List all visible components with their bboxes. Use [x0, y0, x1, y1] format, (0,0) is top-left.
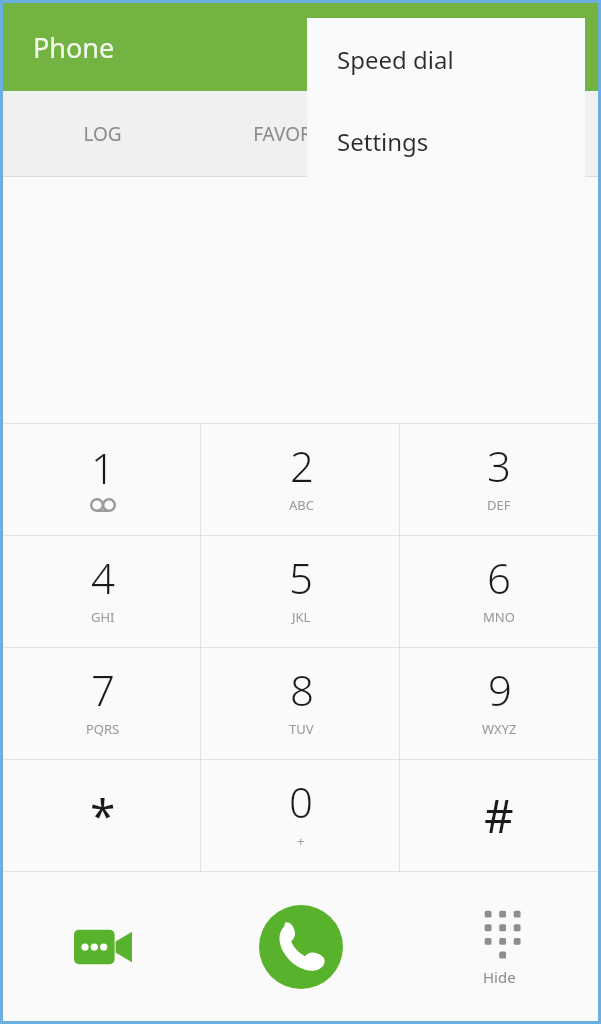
staticText: Settings	[337, 125, 429, 158]
staticText: 3	[487, 437, 511, 494]
button[interactable]: *	[3, 760, 202, 871]
staticText: JKL	[292, 608, 311, 626]
staticText: 4	[91, 549, 115, 606]
button[interactable]: 0	[202, 760, 400, 871]
button[interactable]: 2	[202, 424, 400, 535]
staticText: PQRS	[86, 720, 120, 738]
button[interactable]: Settings	[307, 100, 585, 183]
staticText: FAVORITES	[253, 121, 350, 147]
staticText: ABC	[289, 496, 314, 514]
staticText: WXYZ	[482, 720, 517, 738]
button[interactable]: Call	[202, 872, 400, 1021]
staticText: TUV	[289, 720, 314, 738]
staticText: Hide	[483, 967, 516, 987]
button[interactable]: LOG	[3, 91, 202, 176]
staticText: Speed dial	[337, 43, 454, 76]
staticText: 5	[289, 549, 313, 606]
staticText: DEF	[487, 496, 511, 514]
staticText: 9	[488, 661, 512, 718]
staticText: 7	[91, 661, 115, 718]
button[interactable]: 4	[3, 536, 202, 647]
button[interactable]: 5	[202, 536, 400, 647]
staticText: *	[90, 784, 116, 847]
button[interactable]: 3	[400, 424, 598, 535]
button[interactable]: FAVORITES	[202, 91, 400, 176]
button[interactable]: Speed dial	[307, 18, 585, 100]
staticText: LOG	[83, 121, 122, 147]
staticText: +	[297, 832, 305, 850]
staticText: #	[484, 784, 514, 847]
button[interactable]: 7	[3, 648, 202, 759]
staticText: Phone	[33, 29, 115, 66]
button[interactable]: 9	[400, 648, 598, 759]
button[interactable]: 8	[202, 648, 400, 759]
button[interactable]: CONTACTS	[400, 91, 598, 176]
button[interactable]: Hide keypad	[400, 872, 598, 1021]
staticText: 2	[290, 437, 314, 494]
staticText: 6	[487, 549, 511, 606]
staticText: GHI	[91, 608, 115, 626]
button[interactable]: Video call	[3, 872, 202, 1021]
button[interactable]: 1	[3, 424, 202, 535]
button[interactable]: #	[400, 760, 598, 871]
staticText: 0	[289, 773, 313, 830]
staticText: 1	[91, 439, 115, 496]
staticText: 8	[290, 661, 314, 718]
button[interactable]: 6	[400, 536, 598, 647]
staticText: MNO	[483, 608, 515, 626]
